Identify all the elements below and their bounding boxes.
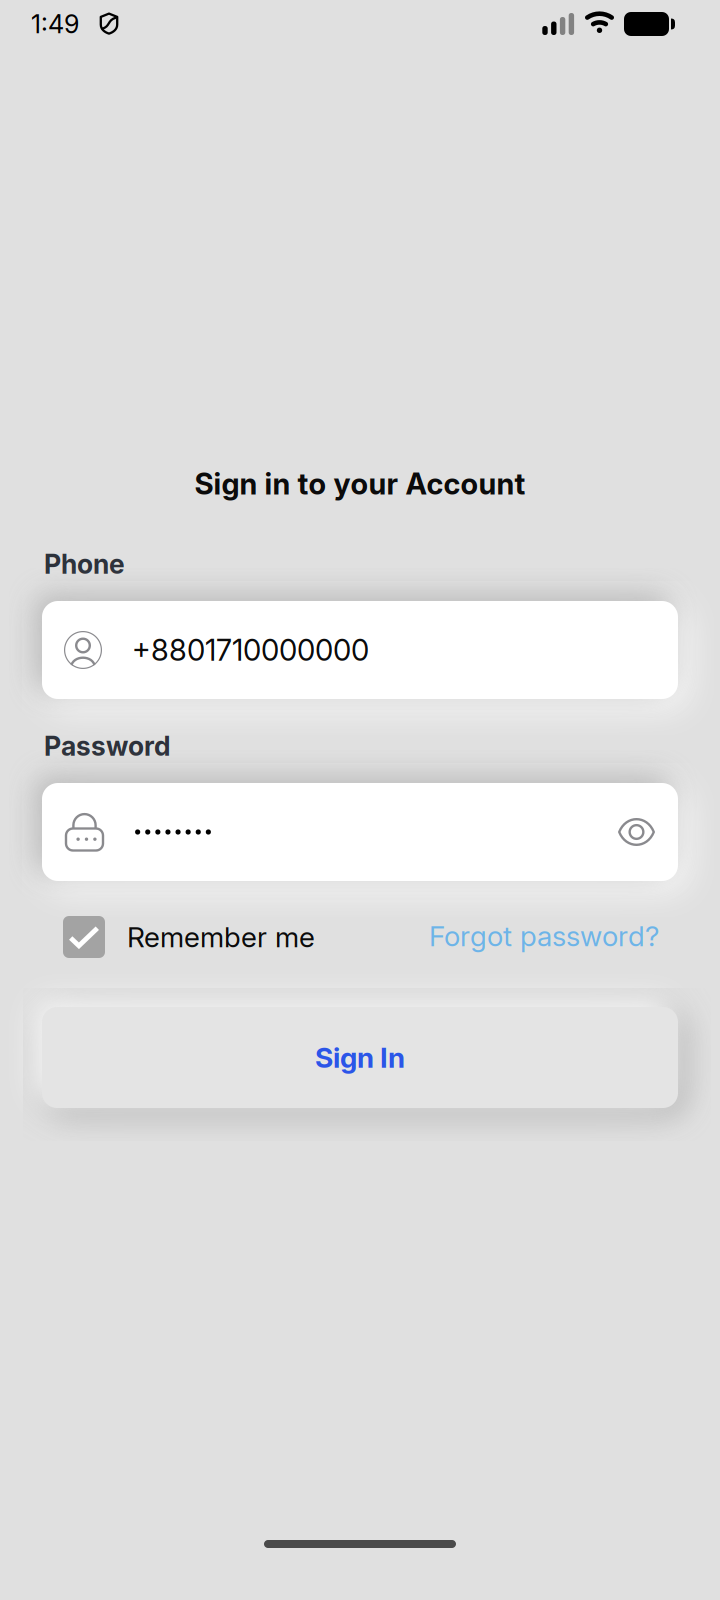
staticText: 1:49	[31, 9, 79, 39]
staticText: +8801710000000	[132, 632, 369, 668]
button[interactable]: Show password	[618, 816, 655, 847]
staticText: Sign in to your Account	[194, 466, 525, 501]
staticText: Remember me	[127, 920, 315, 954]
staticText: Password	[44, 730, 171, 762]
staticText: Phone	[44, 548, 125, 580]
button[interactable]: Remember me	[63, 916, 315, 958]
staticText: Sign In	[315, 1041, 405, 1074]
staticText: Forgot password?	[429, 919, 659, 953]
button[interactable]: Sign In	[42, 1007, 678, 1108]
button[interactable]: Forgot password?	[427, 919, 659, 953]
